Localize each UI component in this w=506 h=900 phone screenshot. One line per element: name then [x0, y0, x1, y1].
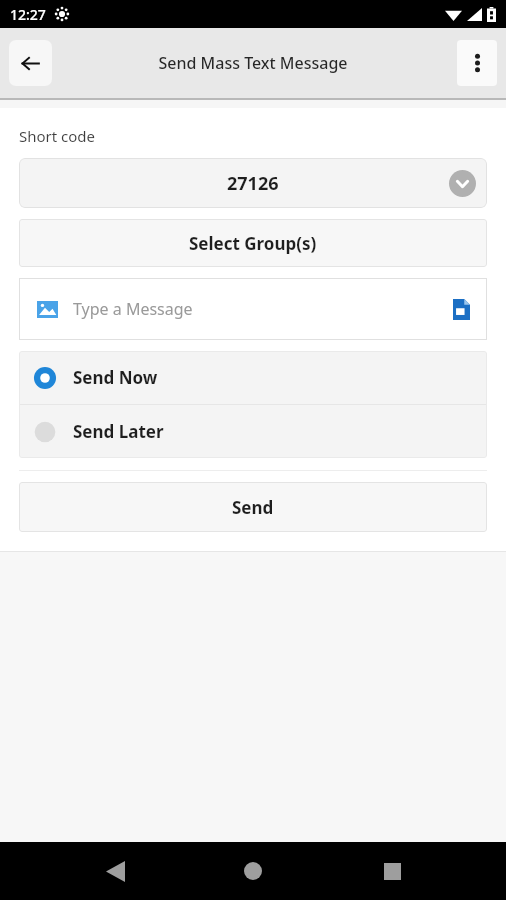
staticText: Type a Message [73, 298, 193, 320]
button[interactable]: Attach image [36, 298, 58, 320]
button[interactable]: Send Now [19, 351, 487, 404]
staticText: 12:27 [10, 5, 46, 24]
staticText: Send Now [73, 366, 158, 389]
button[interactable]: Home [229, 847, 277, 895]
button[interactable]: More options [457, 40, 497, 86]
button[interactable]: Attach image [19, 278, 487, 340]
staticText: Send [232, 496, 274, 519]
button[interactable]: Recent apps [368, 847, 416, 895]
button[interactable]: 27126 [19, 158, 487, 208]
staticText: Short code [19, 126, 96, 146]
button[interactable]: Send Later [19, 405, 487, 458]
button[interactable]: Back [91, 847, 139, 895]
button[interactable]: Select Group(s) [19, 219, 487, 267]
button[interactable]: Send [19, 482, 487, 532]
staticText: Send Mass Text Message [158, 52, 348, 74]
staticText: 27126 [227, 171, 279, 196]
button[interactable]: Attach file [449, 297, 473, 321]
button[interactable]: Back [9, 40, 52, 86]
staticText: Select Group(s) [189, 232, 317, 255]
staticText: Send Later [73, 420, 164, 443]
